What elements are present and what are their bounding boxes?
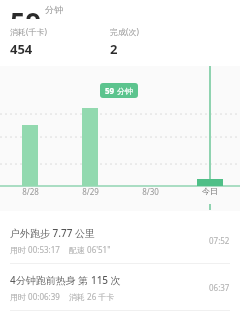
staticText: 07:52 [209,235,230,246]
button[interactable]: 4分钟跑前热身 第 115 次 [0,264,240,310]
button[interactable]: 消耗(千卡) [10,26,110,58]
staticText: 4分钟跑前热身 第 115 次 [10,273,121,287]
staticText: 配速 06'51" [69,244,111,255]
staticText: 用时 00:06:39 [10,291,60,302]
staticText: 59 [10,3,41,19]
staticText: 用时 00:53:17 [10,244,60,255]
button[interactable]: 户外跑步 7.77 公里 [0,217,240,263]
staticText: 完成(次) [110,26,139,37]
staticText: 分钟 [117,86,133,96]
staticText: 户外跑步 7.77 公里 [10,226,96,240]
staticText: 8/28 [22,186,39,197]
staticText: 454 [10,40,33,58]
staticText: 消耗(千卡) [10,26,47,37]
button[interactable]: 59 [0,66,240,211]
staticText: 消耗 26 千卡 [69,291,115,302]
staticText: 8/29 [82,186,99,197]
staticText: 59 [105,85,115,96]
staticText: 分钟 [45,4,63,15]
button[interactable]: 59 [100,83,138,98]
button[interactable]: 完成(次) [110,26,210,58]
staticText: 2 [110,40,118,58]
staticText: 8/30 [142,186,159,197]
staticText: 今日 [202,186,218,196]
staticText: 06:37 [209,282,230,293]
